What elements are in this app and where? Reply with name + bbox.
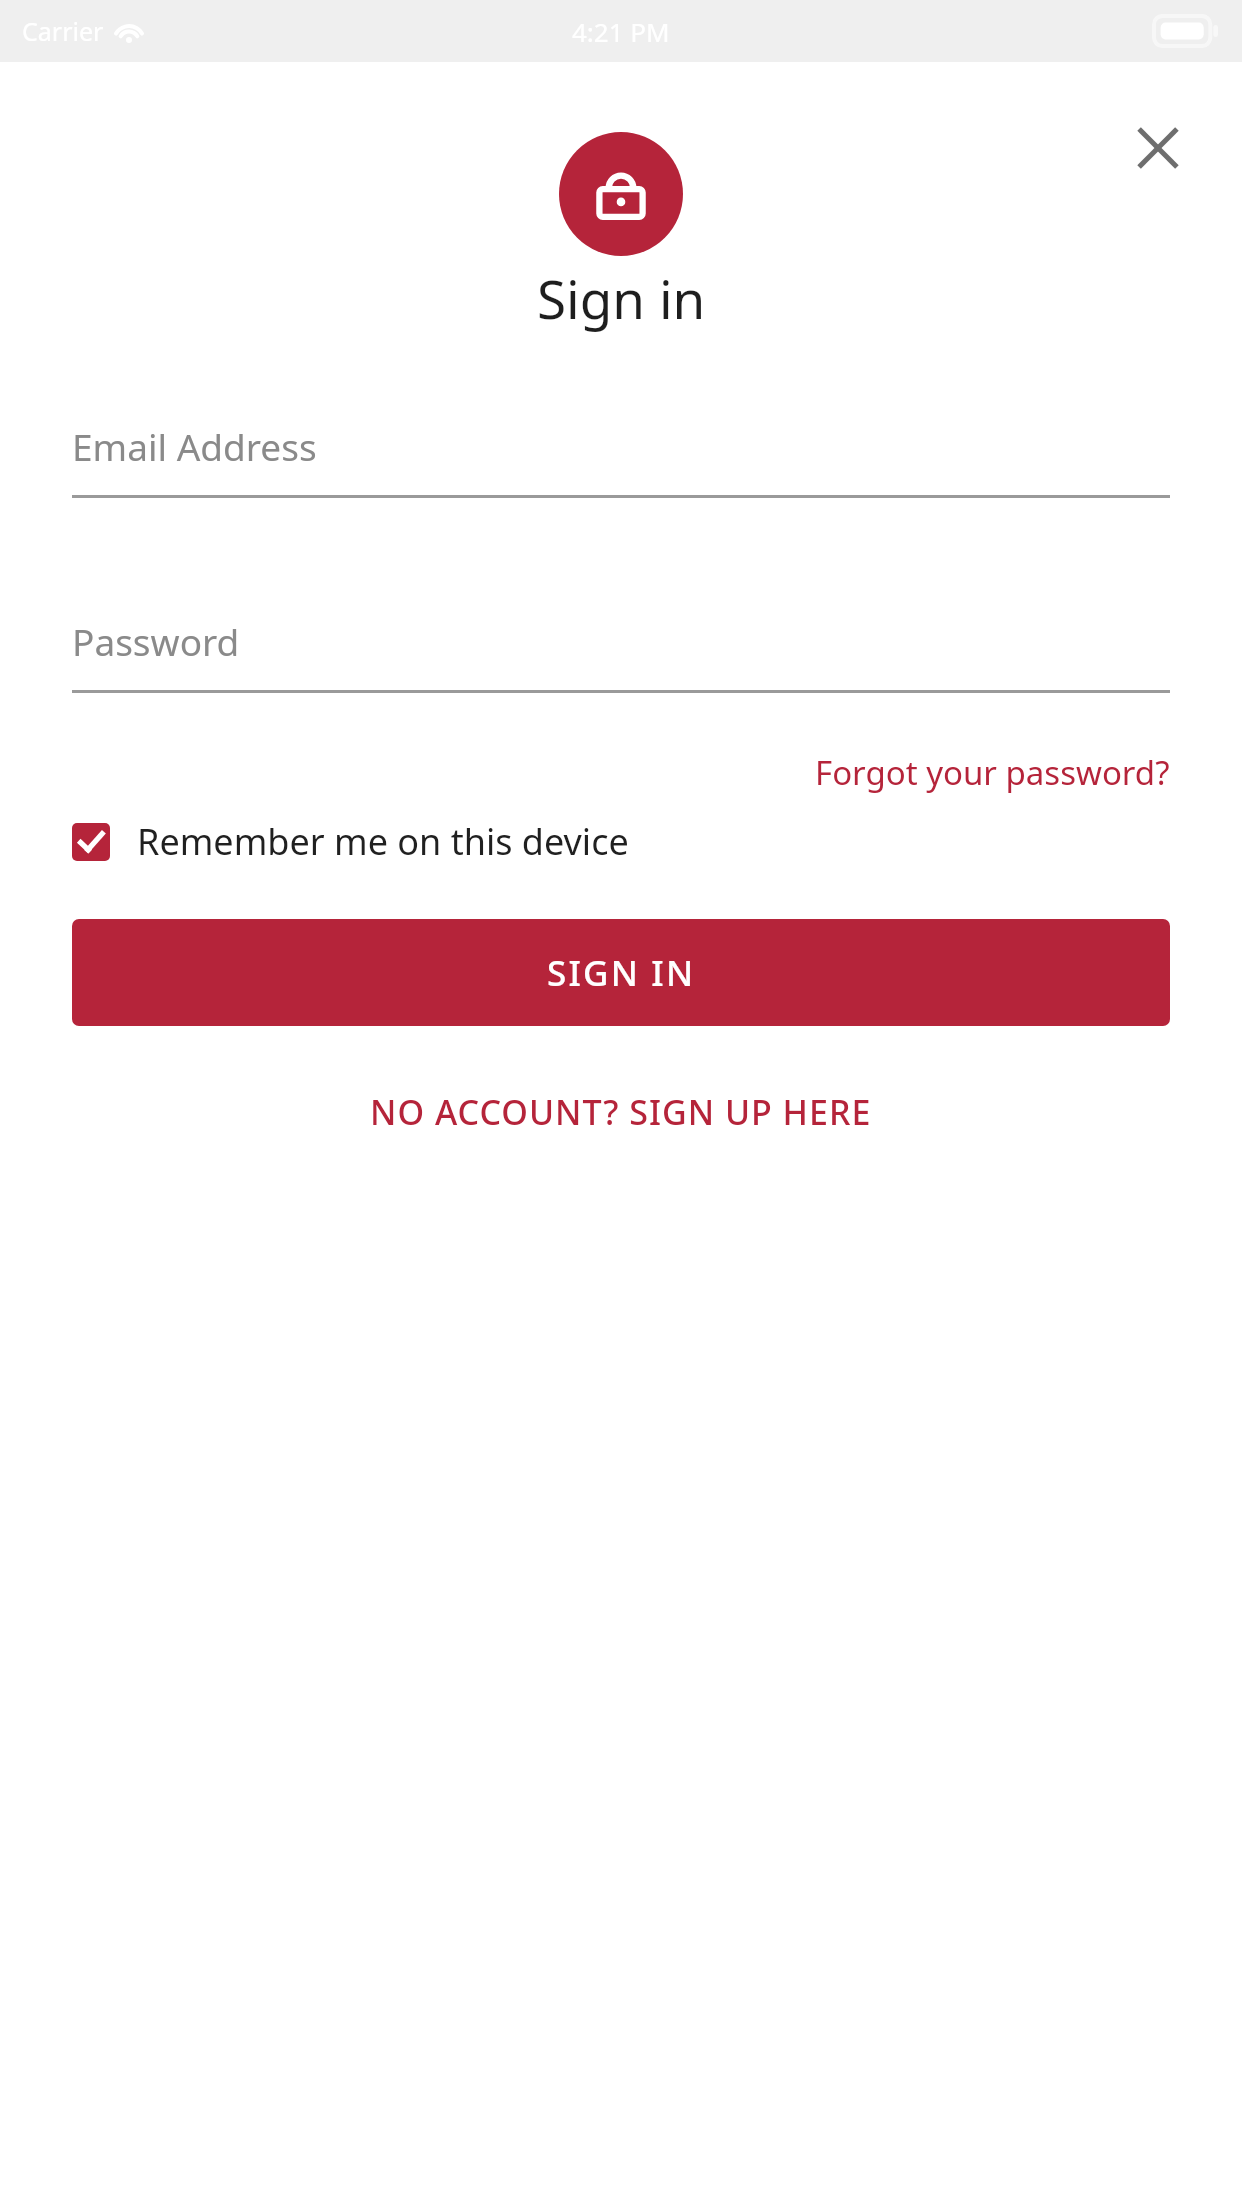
staticText: NO ACCOUNT? SIGN UP HERE xyxy=(370,1089,872,1135)
staticText: SIGN IN xyxy=(547,949,696,997)
button[interactable]: Email Address xyxy=(72,402,1170,498)
button[interactable]: Close xyxy=(1120,110,1196,186)
button[interactable]: NO ACCOUNT? SIGN UP HERE xyxy=(72,1089,1170,1135)
staticText: Remember me on this device xyxy=(137,817,629,866)
button[interactable]: Remember me on this device xyxy=(72,817,1170,866)
staticText: Sign in xyxy=(537,262,706,334)
staticText: Forgot your password? xyxy=(815,750,1170,795)
staticText: 4:21 PM xyxy=(572,14,670,49)
staticText: Carrier xyxy=(22,14,104,48)
button[interactable]: SIGN IN xyxy=(72,919,1170,1026)
staticText: Password xyxy=(72,616,240,666)
button[interactable]: Forgot your password? xyxy=(815,748,1170,797)
button[interactable]: Password xyxy=(72,597,1170,693)
staticText: Email Address xyxy=(72,421,317,471)
